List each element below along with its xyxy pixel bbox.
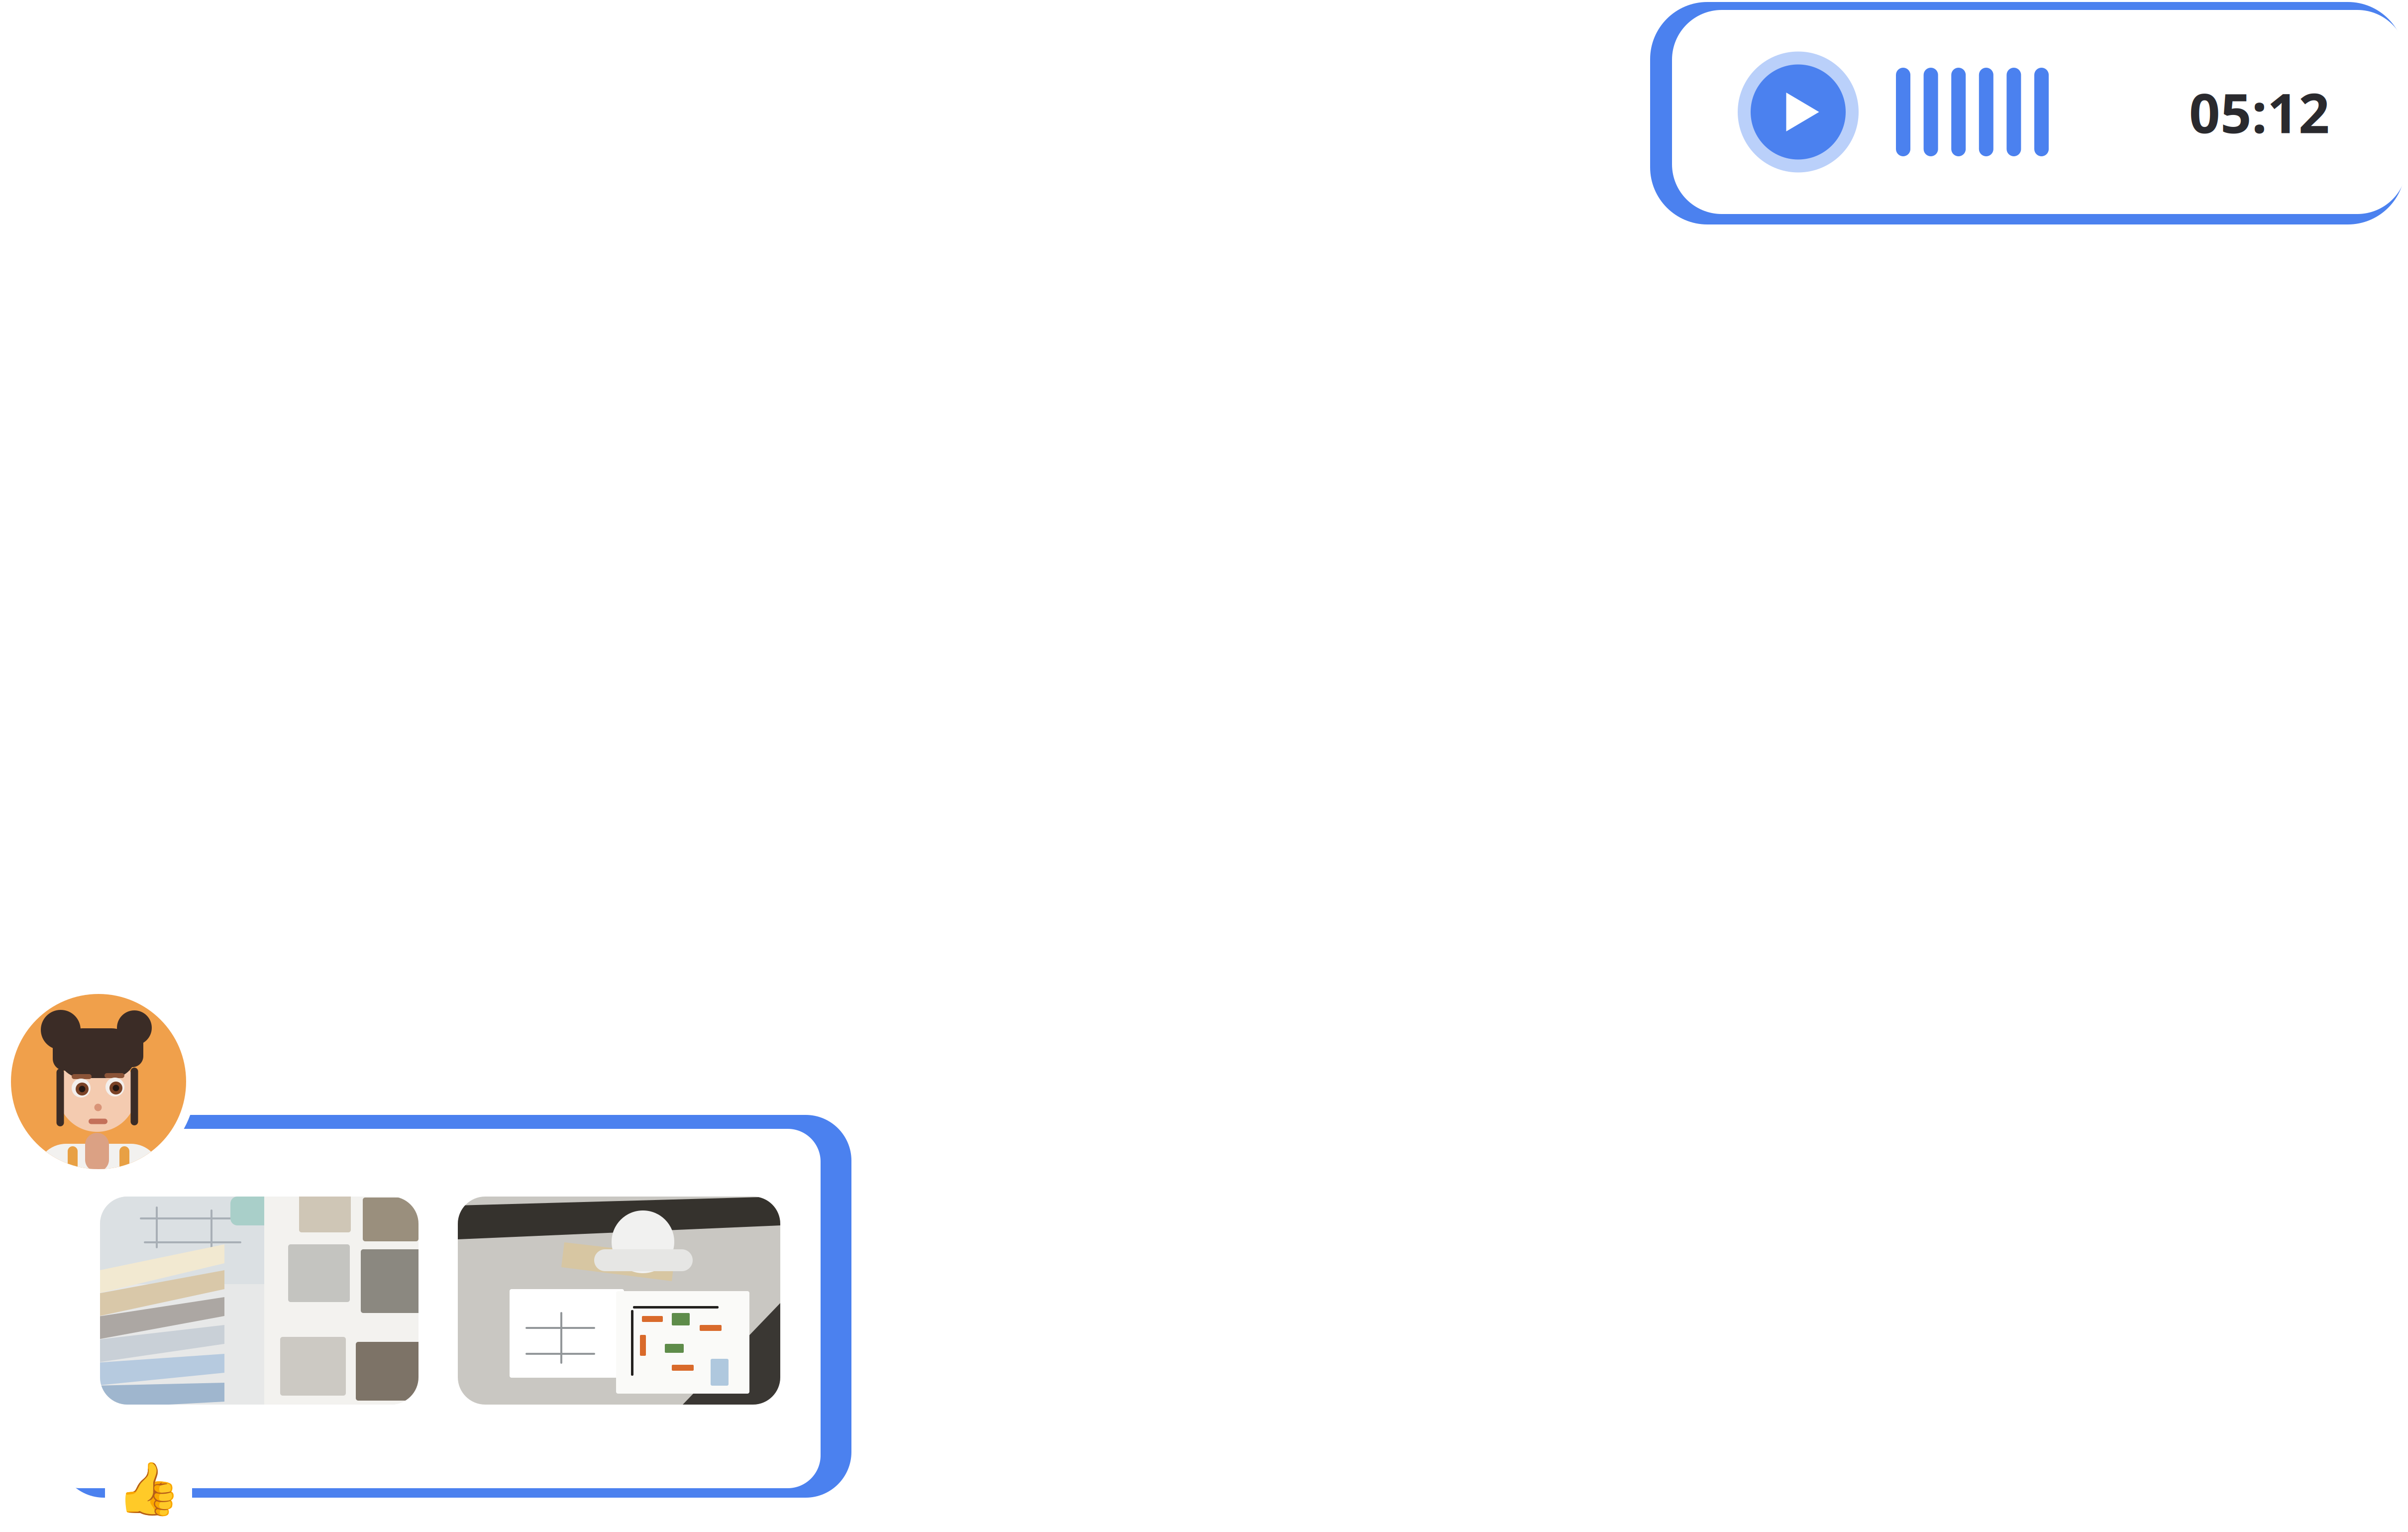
button[interactable] bbox=[47, 1129, 821, 1488]
staticText: 👍 bbox=[116, 1459, 181, 1518]
button[interactable]: Play voice message bbox=[1738, 52, 1859, 172]
button[interactable]: Thumbs up reaction bbox=[105, 1448, 192, 1530]
staticText: 05:12 bbox=[2189, 76, 2330, 148]
button[interactable]: 05:12 bbox=[1672, 10, 2407, 214]
